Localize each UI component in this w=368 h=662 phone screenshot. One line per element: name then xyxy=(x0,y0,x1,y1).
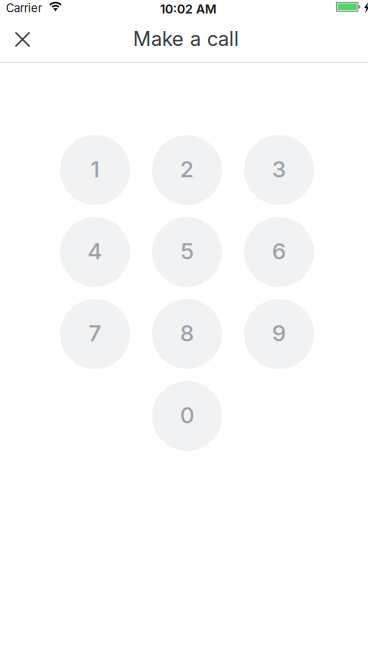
button[interactable]: 2 xyxy=(152,135,222,205)
staticText: 9 xyxy=(272,319,286,346)
button[interactable]: 5 xyxy=(152,217,222,287)
staticText: 3 xyxy=(272,155,286,182)
button[interactable]: Close xyxy=(0,20,45,62)
button[interactable]: 8 xyxy=(152,299,222,369)
button[interactable]: 9 xyxy=(244,299,314,369)
staticText: Make a call xyxy=(133,27,239,51)
staticText: 4 xyxy=(87,237,102,264)
staticText: 7 xyxy=(88,319,101,346)
staticText: 6 xyxy=(272,237,286,264)
staticText: 0 xyxy=(180,401,194,428)
staticText: 1 xyxy=(90,155,99,182)
staticText: Carrier xyxy=(6,1,42,15)
button[interactable]: 6 xyxy=(244,217,314,287)
button[interactable]: 1 xyxy=(60,135,130,205)
staticText: 10:02 AM xyxy=(160,2,216,17)
button[interactable]: 4 xyxy=(60,217,130,287)
button[interactable]: 3 xyxy=(244,135,314,205)
staticText: 5 xyxy=(180,237,193,264)
button[interactable]: 7 xyxy=(60,299,130,369)
staticText: 2 xyxy=(180,155,194,182)
staticText: 8 xyxy=(180,319,194,346)
button[interactable]: 0 xyxy=(152,381,222,451)
